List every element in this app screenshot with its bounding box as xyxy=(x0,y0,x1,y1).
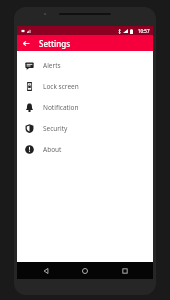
button[interactable]: Notification xyxy=(17,97,153,118)
staticText: Lock screen xyxy=(43,82,79,91)
button[interactable]: Alerts xyxy=(17,55,153,76)
staticText: Notification xyxy=(43,103,79,112)
button[interactable]: Back xyxy=(35,262,57,279)
staticText: 10:57 xyxy=(138,28,150,34)
button[interactable]: Lock screen xyxy=(17,76,153,97)
button[interactable]: Back xyxy=(20,37,33,50)
staticText: Alerts xyxy=(43,61,61,70)
staticText: Security xyxy=(43,124,68,133)
button[interactable]: About xyxy=(17,139,153,160)
button[interactable]: Recent apps xyxy=(114,262,136,279)
button[interactable]: Security xyxy=(17,118,153,139)
staticText: About xyxy=(43,145,62,154)
button[interactable]: Home xyxy=(74,262,96,279)
staticText: Settings xyxy=(39,38,71,49)
